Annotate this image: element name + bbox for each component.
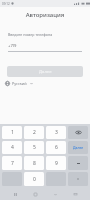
staticText: Русский: [12, 81, 27, 86]
button[interactable]: Back: [50, 189, 60, 199]
staticText: 0: [33, 176, 36, 183]
button[interactable]: 8: [24, 156, 44, 170]
staticText: Далее: [73, 145, 84, 150]
button[interactable]: Далее: [7, 66, 83, 77]
button[interactable]: Русский: [5, 81, 33, 86]
button[interactable]: 6: [46, 141, 66, 154]
button[interactable]: 3: [46, 126, 66, 139]
staticText: 4: [11, 144, 14, 151]
staticText: 2: [33, 129, 36, 136]
button[interactable]: Backspace: [68, 126, 88, 139]
button[interactable]: Далее: [68, 141, 88, 154]
staticText: 6: [55, 144, 58, 151]
staticText: Далее: [39, 69, 52, 75]
button[interactable]: Hide keyboard: [70, 189, 80, 199]
button[interactable]: 4: [2, 141, 22, 154]
staticText: 3: [55, 129, 58, 136]
staticText: 7: [11, 160, 14, 167]
button[interactable]: Home: [30, 189, 40, 199]
button[interactable]: Dot: [68, 172, 88, 186]
staticText: 8: [33, 160, 36, 167]
button[interactable]: 2: [24, 126, 44, 139]
button[interactable]: Recents: [10, 189, 20, 199]
staticText: Авторизация: [0, 11, 90, 19]
button[interactable]: +7(9: [8, 43, 82, 52]
staticText: 5: [33, 144, 36, 151]
button[interactable]: 7: [2, 156, 22, 170]
staticText: 1: [11, 129, 14, 136]
staticText: 09:12: [2, 2, 10, 6]
button[interactable]: 0: [24, 172, 44, 186]
button[interactable]: 9: [46, 156, 66, 170]
button[interactable]: 5: [24, 141, 44, 154]
staticText: 9: [55, 160, 58, 167]
button[interactable]: 1: [2, 126, 22, 139]
staticText: +7(9: [8, 43, 17, 49]
staticText: Введите номер телефона: [8, 32, 53, 37]
button[interactable]: Dash: [68, 156, 88, 170]
